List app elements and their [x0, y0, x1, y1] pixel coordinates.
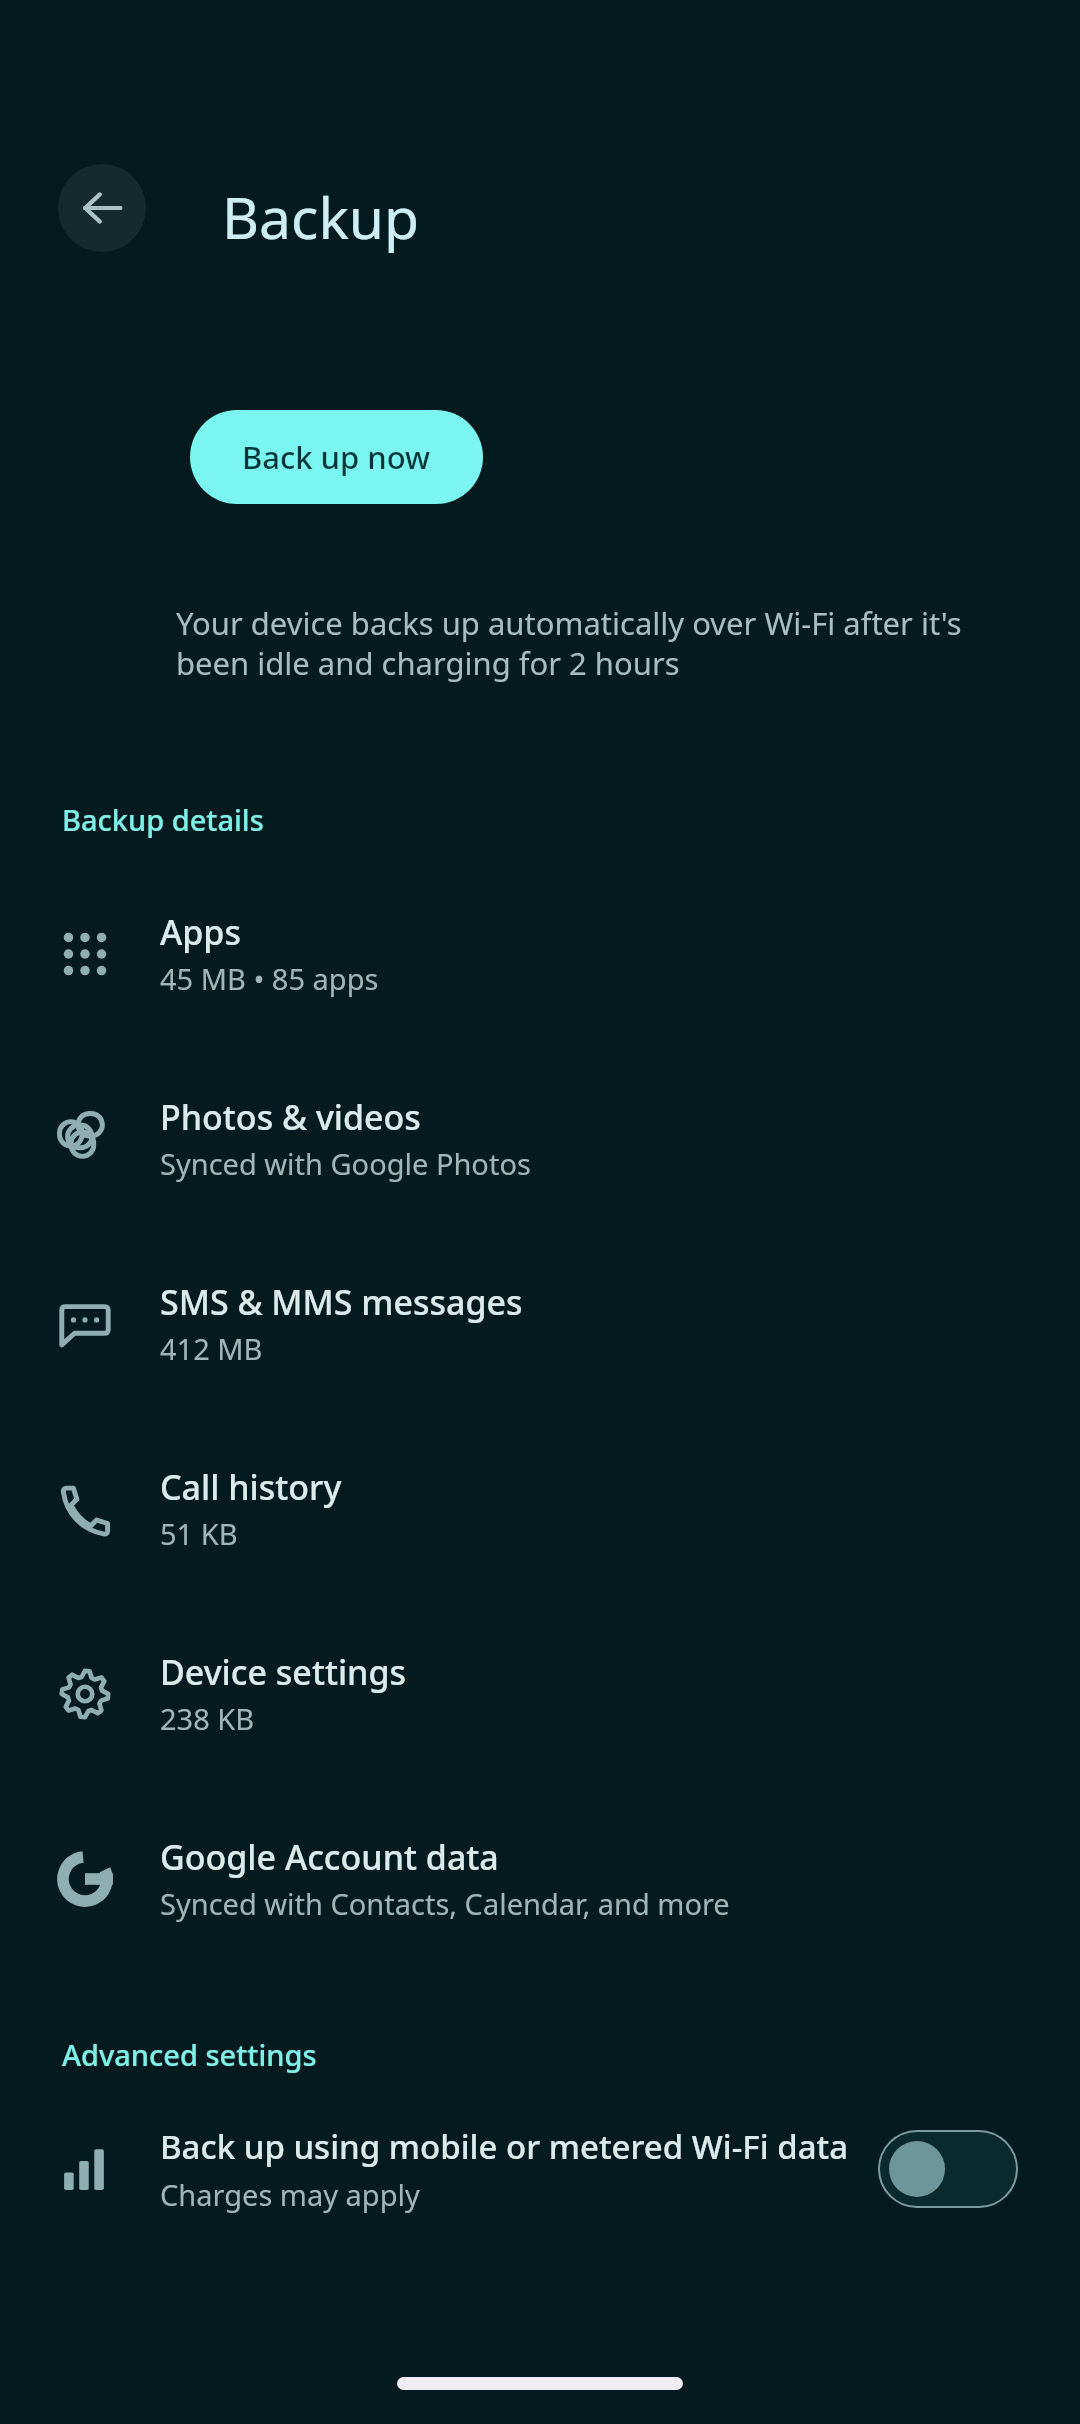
staticText: 45 MB • 85 apps — [160, 959, 379, 998]
staticText: Synced with Contacts, Calendar, and more — [160, 1884, 730, 1923]
button[interactable]: Device settings — [0, 1623, 1080, 1764]
button[interactable]: SMS & MMS messages — [0, 1253, 1080, 1394]
staticText: 51 KB — [160, 1514, 238, 1553]
staticText: Advanced settings — [62, 2035, 317, 2074]
staticText: Photos & videos — [160, 1094, 421, 1140]
staticText: Pixel 9 • 8 hours ago, 12:40 AM — [168, 191, 587, 230]
staticText: Backup — [222, 178, 420, 256]
staticText: Call history — [160, 1464, 342, 1510]
staticText: Charges may apply — [160, 2175, 420, 2214]
staticText: Synced with Google Photos — [160, 1144, 531, 1183]
button[interactable]: Call history — [0, 1438, 1080, 1579]
staticText: SMS & MMS messages — [160, 1279, 523, 1325]
staticText: Back up now — [242, 436, 431, 478]
staticText: Google Account data — [160, 1834, 499, 1880]
staticText: Your device backs up automatically over … — [176, 602, 988, 684]
button[interactable]: Photos & videos — [0, 1068, 1080, 1209]
staticText: 238 KB — [160, 1699, 255, 1738]
staticText: 412 MB — [160, 1329, 263, 1368]
button[interactable]: Apps — [0, 883, 1080, 1024]
button[interactable]: Back up using mobile or metered Wi-Fi da… — [0, 2124, 1080, 2214]
button[interactable]: Google Account data — [0, 1808, 1080, 1949]
staticText: Apps — [160, 909, 241, 955]
button[interactable]: Back — [58, 164, 146, 252]
staticText: Backup details — [62, 800, 264, 839]
button[interactable]: Back up now — [190, 410, 483, 504]
staticText: Back up using mobile or metered Wi-Fi da… — [160, 2124, 849, 2169]
staticText: Device settings — [160, 1649, 407, 1695]
